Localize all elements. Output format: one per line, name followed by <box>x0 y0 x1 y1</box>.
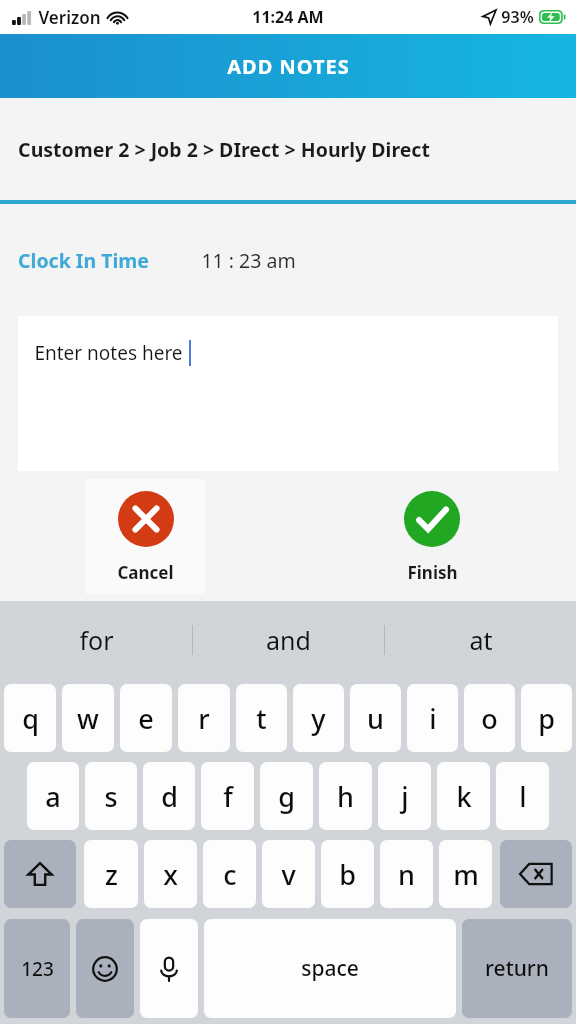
button[interactable]: space <box>204 919 456 1018</box>
staticText: v <box>281 856 296 893</box>
button[interactable]: s <box>85 762 137 830</box>
staticText: c <box>223 856 237 893</box>
button[interactable]: and <box>193 601 384 679</box>
button[interactable]: for <box>0 601 192 679</box>
button[interactable]: n <box>380 840 433 908</box>
staticText: for <box>79 623 114 657</box>
staticText: Clock In Time <box>18 247 149 274</box>
button[interactable]: j <box>378 762 431 830</box>
staticText: 93% <box>501 6 534 28</box>
button[interactable]: z <box>84 840 138 908</box>
staticText: y <box>311 700 326 737</box>
button[interactable]: l <box>496 762 549 830</box>
staticText: r <box>198 700 210 737</box>
staticText: 11:24 AM <box>252 6 324 28</box>
button[interactable]: p <box>521 684 572 752</box>
staticText: Enter notes here <box>34 340 183 366</box>
staticText: l <box>519 778 527 815</box>
staticText: Verizon <box>38 6 101 29</box>
staticText: j <box>401 778 409 815</box>
staticText: and <box>266 623 311 657</box>
button[interactable]: Emoji <box>76 919 134 1018</box>
staticText: h <box>337 778 354 815</box>
staticText: a <box>45 778 61 815</box>
staticText: m <box>453 856 479 893</box>
staticText: t <box>256 700 267 737</box>
button[interactable]: m <box>439 840 492 908</box>
button[interactable]: e <box>120 684 172 752</box>
button[interactable]: Shift <box>4 840 76 908</box>
staticText: ADD NOTES <box>227 53 350 80</box>
button[interactable]: r <box>178 684 230 752</box>
button[interactable]: k <box>437 762 490 830</box>
staticText: p <box>538 700 555 737</box>
staticText: f <box>223 778 233 815</box>
staticText: Customer 2 > Job 2 > DIrect > Hourly Dir… <box>18 136 430 163</box>
button[interactable]: q <box>4 684 56 752</box>
button[interactable]: b <box>321 840 374 908</box>
staticText: q <box>22 700 39 737</box>
staticText: b <box>339 856 356 893</box>
staticText: k <box>456 778 472 815</box>
button[interactable]: v <box>262 840 315 908</box>
button[interactable]: Backspace <box>500 840 572 908</box>
button[interactable]: c <box>203 840 256 908</box>
button[interactable]: Finish <box>372 479 492 594</box>
staticText: 11 : 23 am <box>201 247 296 274</box>
staticText: w <box>77 700 99 737</box>
button[interactable]: g <box>260 762 313 830</box>
button[interactable]: u <box>350 684 401 752</box>
staticText: i <box>429 700 437 737</box>
staticText: Cancel <box>117 561 174 584</box>
staticText: space <box>301 954 359 983</box>
button[interactable]: d <box>143 762 195 830</box>
button[interactable]: o <box>464 684 515 752</box>
button[interactable]: at <box>385 601 576 679</box>
button[interactable]: i <box>407 684 458 752</box>
button[interactable]: Cancel <box>85 479 205 594</box>
staticText: x <box>163 856 178 893</box>
staticText: d <box>161 778 178 815</box>
button[interactable]: f <box>201 762 254 830</box>
staticText: s <box>104 778 118 815</box>
button[interactable]: x <box>144 840 197 908</box>
staticText: return <box>485 954 549 983</box>
button[interactable]: 123 <box>4 919 70 1018</box>
button[interactable]: return <box>462 919 572 1018</box>
staticText: u <box>367 700 384 737</box>
staticText: at <box>469 623 493 657</box>
button[interactable]: w <box>62 684 114 752</box>
button[interactable]: Enter notes here <box>18 316 558 471</box>
button[interactable]: y <box>293 684 344 752</box>
staticText: 123 <box>21 956 54 982</box>
button[interactable]: a <box>27 762 79 830</box>
button[interactable]: t <box>236 684 287 752</box>
staticText: o <box>481 700 498 737</box>
staticText: e <box>138 700 154 737</box>
button[interactable]: h <box>319 762 372 830</box>
staticText: n <box>398 856 415 893</box>
staticText: Finish <box>407 561 458 584</box>
staticText: g <box>278 778 295 815</box>
staticText: z <box>105 856 118 893</box>
button[interactable]: Dictation <box>140 919 198 1018</box>
